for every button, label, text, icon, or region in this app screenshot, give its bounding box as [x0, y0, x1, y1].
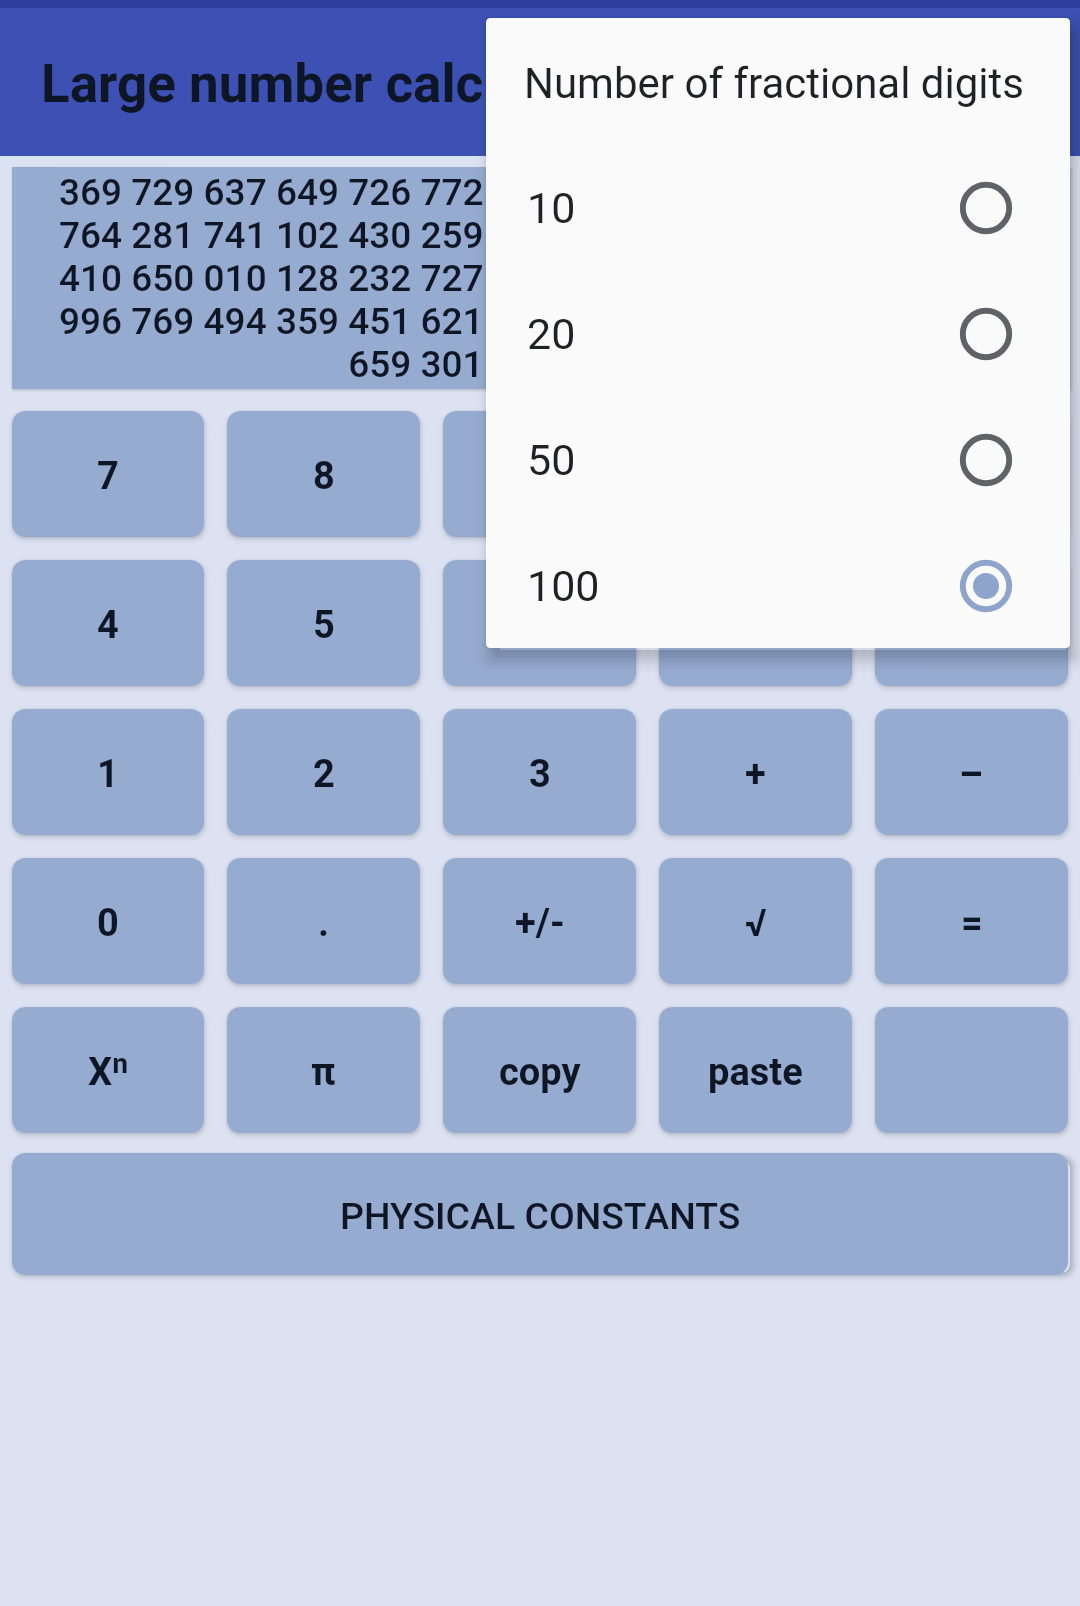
staticText: 3: [529, 752, 551, 797]
staticText: =: [961, 901, 983, 946]
staticText: ÷: [961, 454, 983, 499]
button[interactable]: 2: [227, 709, 420, 835]
button[interactable]: –: [875, 709, 1068, 835]
button[interactable]: 3: [443, 709, 636, 835]
staticText: π: [311, 1050, 336, 1095]
staticText: Number of fractional digits: [524, 59, 1024, 108]
button[interactable]: blank key: [875, 1007, 1068, 1133]
button[interactable]: 6: [443, 560, 636, 686]
staticText: paste: [708, 1050, 803, 1095]
button[interactable]: 100: [486, 523, 1070, 648]
button[interactable]: √: [659, 858, 852, 984]
staticText: PHYSICAL CONSTANTS: [340, 1194, 741, 1238]
button[interactable]: copy: [443, 1007, 636, 1133]
button[interactable]: 7: [12, 411, 204, 537]
button[interactable]: +/-: [443, 858, 636, 984]
button[interactable]: PHYSICAL CONSTANTS: [12, 1153, 1068, 1275]
button[interactable]: =: [875, 858, 1068, 984]
button[interactable]: C: [659, 560, 852, 686]
staticText: 100: [527, 561, 958, 611]
staticText: Large number calculator: [41, 53, 622, 115]
button[interactable]: 0: [12, 858, 204, 984]
button[interactable]: 4: [12, 560, 204, 686]
staticText: 1: [97, 752, 119, 797]
staticText: √: [745, 901, 767, 946]
button[interactable]: π: [227, 1007, 420, 1133]
button[interactable]: 9: [443, 411, 636, 537]
staticText: copy: [499, 1050, 581, 1095]
staticText: Xⁿ: [88, 1050, 129, 1095]
staticText: 369 729 637 649 726 772 450 913 864 208 …: [24, 171, 1062, 386]
button[interactable]: 20: [486, 271, 1070, 397]
button[interactable]: CE: [875, 560, 1068, 686]
staticText: 2: [313, 752, 335, 797]
staticText: CE: [948, 603, 995, 648]
button[interactable]: paste: [659, 1007, 852, 1133]
button[interactable]: Xⁿ: [12, 1007, 204, 1133]
button[interactable]: .: [227, 858, 420, 984]
button[interactable]: 8: [227, 411, 420, 537]
button[interactable]: 50: [486, 397, 1070, 523]
button[interactable]: 10: [486, 145, 1070, 271]
button[interactable]: +: [659, 709, 852, 835]
button[interactable]: 5: [227, 560, 420, 686]
staticText: +/-: [515, 901, 565, 946]
staticText: 9: [529, 454, 551, 499]
staticText: +: [745, 752, 766, 797]
staticText: 0: [97, 901, 119, 946]
staticText: 50: [527, 435, 958, 485]
staticText: 20: [527, 309, 958, 359]
staticText: 10: [527, 183, 958, 233]
staticText: 8: [313, 454, 335, 499]
button[interactable]: ÷: [875, 411, 1068, 537]
staticText: –: [959, 752, 984, 797]
staticText: 4: [97, 603, 119, 648]
staticText: 7: [97, 454, 119, 499]
staticText: 5: [313, 603, 335, 648]
button[interactable]: 1: [12, 709, 204, 835]
staticText: .: [318, 901, 330, 946]
